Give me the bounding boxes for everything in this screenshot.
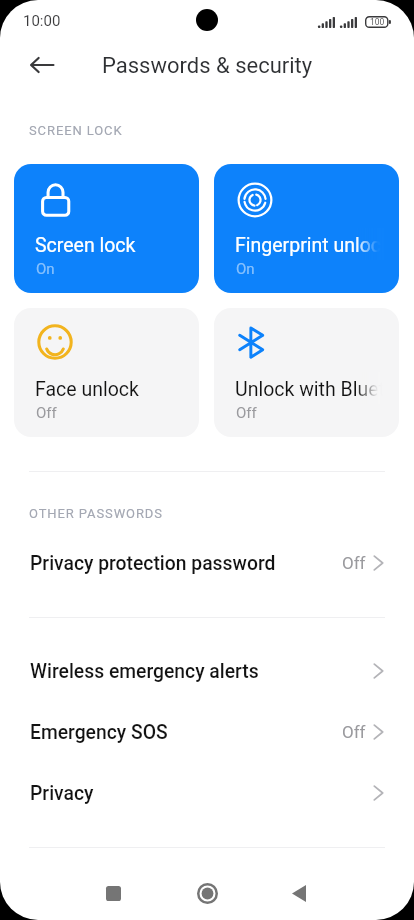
staticText: Fingerprint unlock [235, 234, 391, 257]
button[interactable]: Wireless emergency alerts [0, 641, 414, 701]
button[interactable]: Privacy protection password [0, 533, 414, 593]
staticText: Face unlock [35, 378, 139, 401]
staticText: OTHER PASSWORDS [29, 506, 163, 521]
staticText: On [236, 260, 255, 278]
button[interactable]: Privacy [0, 763, 414, 823]
staticText: Off [36, 404, 57, 422]
staticText: 10:00 [23, 12, 61, 30]
staticText: On [36, 260, 55, 278]
staticText: Screen lock [35, 234, 136, 257]
staticText: Wireless emergency alerts [30, 660, 259, 683]
button[interactable]: Unlock with Bluetooth [214, 308, 399, 437]
staticText: SCREEN LOCK [29, 123, 123, 138]
button[interactable]: Emergency SOS [0, 702, 414, 762]
button[interactable]: Home [183, 869, 231, 917]
staticText: Off [236, 404, 257, 422]
button[interactable]: Face unlock [14, 308, 199, 437]
button[interactable]: Back [20, 43, 64, 87]
staticText: Off [342, 722, 366, 742]
button[interactable]: Back [275, 869, 323, 917]
button[interactable]: Screen lock [14, 164, 199, 293]
staticText: Privacy protection password [30, 552, 276, 575]
staticText: Passwords & security [102, 53, 313, 79]
button[interactable]: Recents [89, 869, 137, 917]
button[interactable]: Fingerprint unlock [214, 164, 399, 293]
staticText: 100 [370, 17, 385, 27]
staticText: Privacy [30, 782, 94, 805]
staticText: Off [342, 553, 366, 573]
staticText: Emergency SOS [30, 721, 168, 744]
staticText: Unlock with Bluetooth [235, 378, 399, 401]
